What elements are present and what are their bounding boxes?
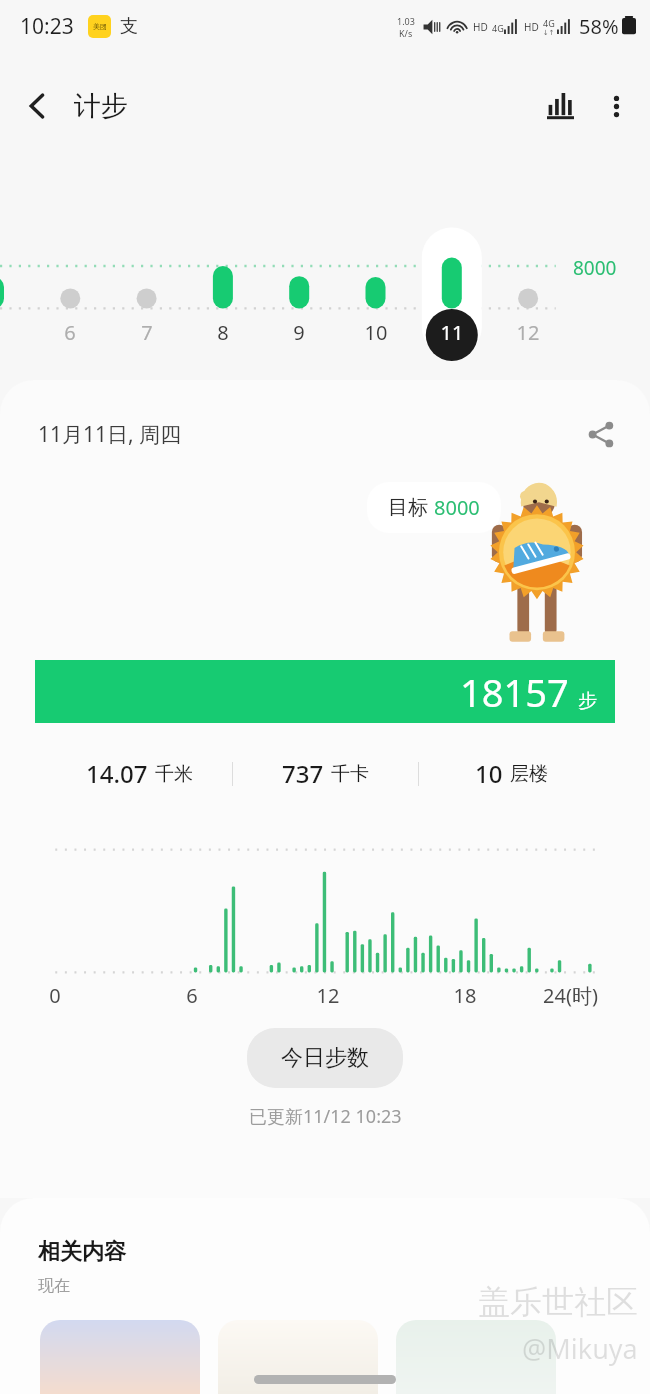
button[interactable]: 相关内容 [38,1238,126,1266]
staticText: @Mikuya [522,1330,638,1367]
staticText: 24(时) [543,982,598,1009]
staticText: HD [473,20,488,34]
staticText: 层楼 [510,762,548,786]
staticText: K/s [399,27,413,39]
staticText: 11月11日, 周四 [38,420,182,449]
button[interactable]: 10 [419,757,604,790]
staticText: HD [524,20,539,34]
button[interactable]: 11 [435,319,469,346]
button[interactable]: 9 [282,319,316,346]
button[interactable]: 今日步数 [247,1028,403,1088]
staticText: 支 [120,15,138,38]
button[interactable]: 18157 [35,660,615,723]
staticText: 现在 [38,1276,70,1296]
staticText: 737 [282,757,324,790]
button[interactable] [40,1320,200,1394]
button[interactable]: 10 [359,319,393,346]
staticText: 千米 [155,762,193,786]
staticText: 10:23 [20,12,74,41]
staticText: 14.07 [86,757,148,790]
staticText: 美团 [93,22,107,31]
staticText: 4G [543,17,555,29]
staticText: 8000 [434,494,480,521]
button[interactable]: 7 [130,319,164,346]
button[interactable]: Trends chart [532,78,588,134]
staticText: 今日步数 [281,1044,369,1072]
staticText: 步 [578,689,597,713]
staticText: 58% [579,13,619,40]
staticText: 已更新11/12 10:23 [249,1104,402,1129]
staticText: 目标 [388,495,428,520]
staticText: 0 [35,982,75,1009]
button[interactable]: 737 [233,757,418,790]
staticText: 18157 [460,666,569,718]
staticText: 18 [445,982,485,1009]
staticText: 计步 [74,89,128,123]
staticText: 4G [492,22,504,34]
button[interactable]: 6 [53,319,87,346]
button[interactable]: More options [588,78,644,134]
staticText: 6 [172,982,212,1009]
button[interactable] [218,1320,378,1394]
staticText: 8000 [573,255,617,281]
button[interactable]: 目标 [367,482,501,533]
staticText: 1.03 [397,15,415,27]
staticText: ↓↑ [543,29,555,37]
button[interactable]: Share [574,407,628,461]
button[interactable] [396,1320,556,1394]
staticText: 千卡 [331,762,369,786]
staticText: 12 [308,982,348,1009]
staticText: 10 [475,757,503,790]
staticText: 盖乐世社区 [478,1282,638,1322]
button[interactable]: 8 [206,319,240,346]
button[interactable]: 14.07 [46,757,232,790]
button[interactable]: Back [8,76,68,136]
button[interactable]: 12 [511,319,545,346]
